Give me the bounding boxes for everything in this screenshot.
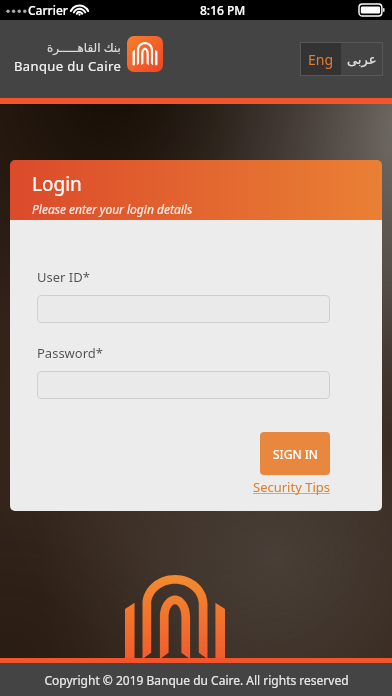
staticText: عربى — [347, 52, 377, 67]
button[interactable] — [37, 371, 330, 399]
button[interactable] — [37, 295, 330, 323]
staticText: Banque du Caire — [14, 57, 121, 75]
staticText: Password* — [37, 344, 103, 362]
staticText: Carrier — [28, 2, 68, 18]
staticText: Please enter your login details — [32, 201, 193, 217]
button[interactable]: عربى — [341, 42, 383, 76]
staticText: 8:16 PM — [200, 2, 246, 18]
staticText: بنك القاهـــــرة — [47, 39, 121, 55]
button[interactable]: Eng — [300, 42, 341, 76]
staticText: User ID* — [37, 268, 90, 286]
staticText: Security Tips — [253, 478, 330, 496]
staticText: Eng — [308, 50, 334, 69]
staticText: Copyright © 2019 Banque du Caire. All ri… — [44, 672, 349, 688]
button[interactable]: Security Tips — [253, 478, 330, 496]
button[interactable]: SIGN IN — [260, 432, 330, 475]
staticText: SIGN IN — [273, 446, 318, 462]
staticText: Login — [32, 171, 82, 197]
